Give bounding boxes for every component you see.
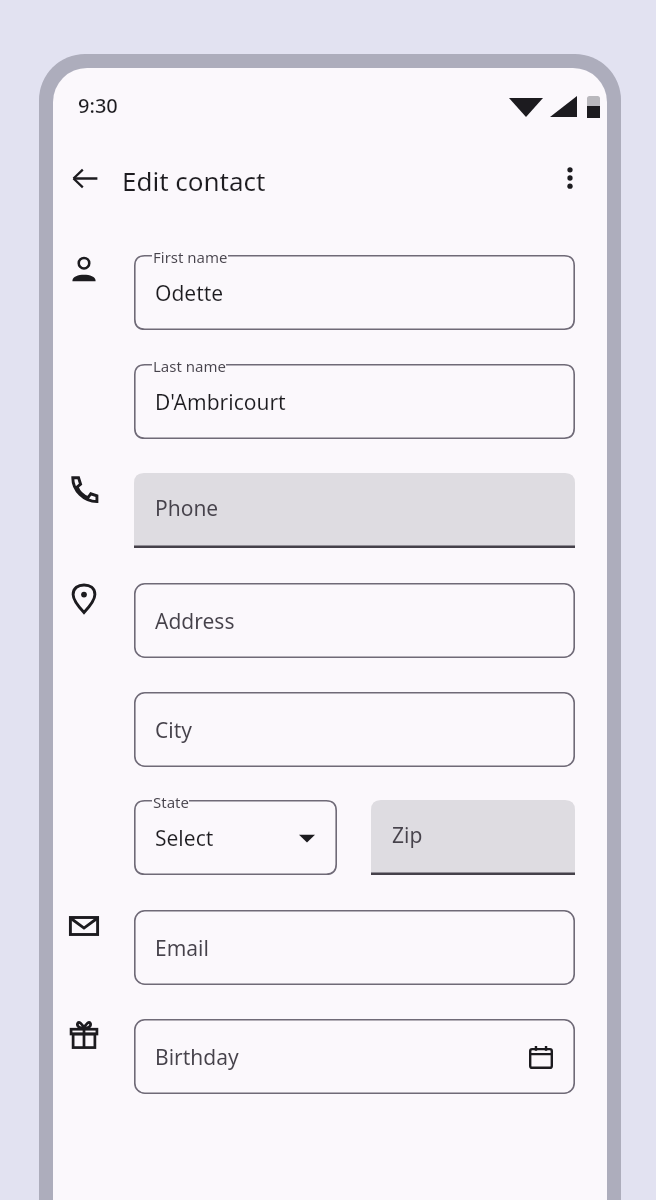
button[interactable]: Back xyxy=(60,153,110,203)
staticText: City xyxy=(155,716,192,745)
staticText: Address xyxy=(155,607,235,636)
button[interactable]: First name xyxy=(134,255,575,330)
button[interactable]: City xyxy=(134,692,575,767)
button[interactable]: More options xyxy=(545,153,595,203)
button[interactable]: Address xyxy=(134,583,575,658)
button[interactable]: Birthday xyxy=(134,1019,575,1094)
button[interactable]: Email xyxy=(134,910,575,985)
staticText: D'Ambricourt xyxy=(155,388,286,417)
staticText: State xyxy=(153,792,189,812)
staticText: Zip xyxy=(392,821,423,850)
button[interactable]: Edit contact xyxy=(122,163,266,198)
button[interactable]: Zip xyxy=(371,800,575,875)
staticText: Odette xyxy=(155,279,224,308)
button[interactable]: Phone xyxy=(134,473,575,548)
staticText: Email xyxy=(155,934,209,963)
staticText: Phone xyxy=(155,494,219,523)
button[interactable]: State xyxy=(134,800,337,875)
staticText: Birthday xyxy=(155,1043,239,1072)
staticText: First name xyxy=(153,247,228,267)
staticText: 9:30 xyxy=(78,92,118,119)
staticText: Last name xyxy=(153,356,226,376)
staticText: Select xyxy=(155,824,214,853)
button[interactable]: Last name xyxy=(134,364,575,439)
